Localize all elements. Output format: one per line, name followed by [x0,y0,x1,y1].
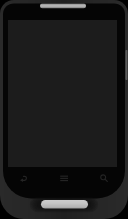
button[interactable]: Menu [55,171,73,189]
button[interactable]: Back [15,171,33,189]
button[interactable]: Search [95,171,113,189]
button[interactable]: Home [41,199,88,209]
